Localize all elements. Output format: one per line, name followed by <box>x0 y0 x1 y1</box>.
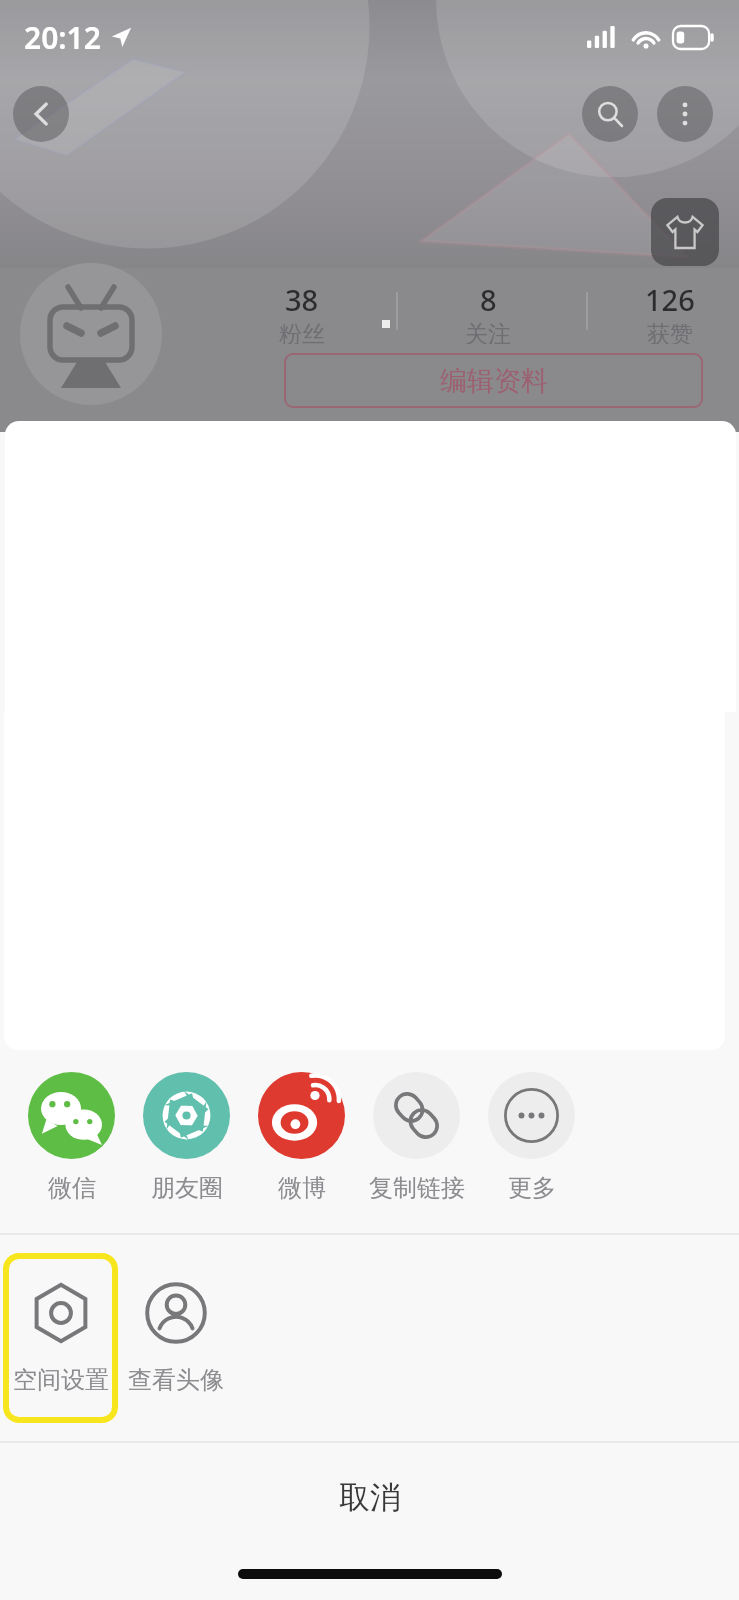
button[interactable]: 微信 <box>14 1072 129 1203</box>
button[interactable]: Back <box>13 86 69 142</box>
staticText: 微博 <box>278 1173 326 1203</box>
button[interactable] <box>20 263 162 405</box>
staticText: 38 <box>285 280 319 319</box>
button[interactable]: 38 <box>250 280 354 344</box>
button[interactable]: 空间设置 <box>3 1253 118 1423</box>
staticText: 20:12 <box>24 17 101 58</box>
staticText: 取消 <box>339 1478 401 1517</box>
staticText: 空间设置 <box>13 1365 109 1395</box>
staticText: 微信 <box>48 1173 96 1203</box>
staticText: 编辑资料 <box>440 364 548 398</box>
staticText: 粉丝 <box>279 320 325 344</box>
staticText: 8 <box>480 280 497 319</box>
staticText: 关注 <box>465 320 511 344</box>
button[interactable]: 更多 <box>474 1072 589 1203</box>
staticText: 复制链接 <box>369 1173 465 1203</box>
button[interactable]: More options <box>657 86 713 142</box>
button[interactable]: 8 <box>436 280 540 344</box>
button[interactable]: 微博 <box>244 1072 359 1203</box>
button[interactable]: 查看头像 <box>118 1253 233 1423</box>
button[interactable]: 126 <box>618 280 722 344</box>
staticText: 获赞 <box>647 320 693 344</box>
button[interactable]: 编辑资料 <box>284 353 703 408</box>
button[interactable]: 取消 <box>0 1443 739 1551</box>
button[interactable]: Search <box>582 86 638 142</box>
button[interactable]: Garb <box>651 198 719 266</box>
staticText: 查看头像 <box>128 1365 224 1395</box>
staticText: 朋友圈 <box>151 1173 223 1203</box>
staticText: 更多 <box>508 1173 556 1203</box>
button[interactable]: 朋友圈 <box>129 1072 244 1203</box>
staticText: 126 <box>645 280 695 319</box>
button[interactable]: 复制链接 <box>359 1072 474 1203</box>
